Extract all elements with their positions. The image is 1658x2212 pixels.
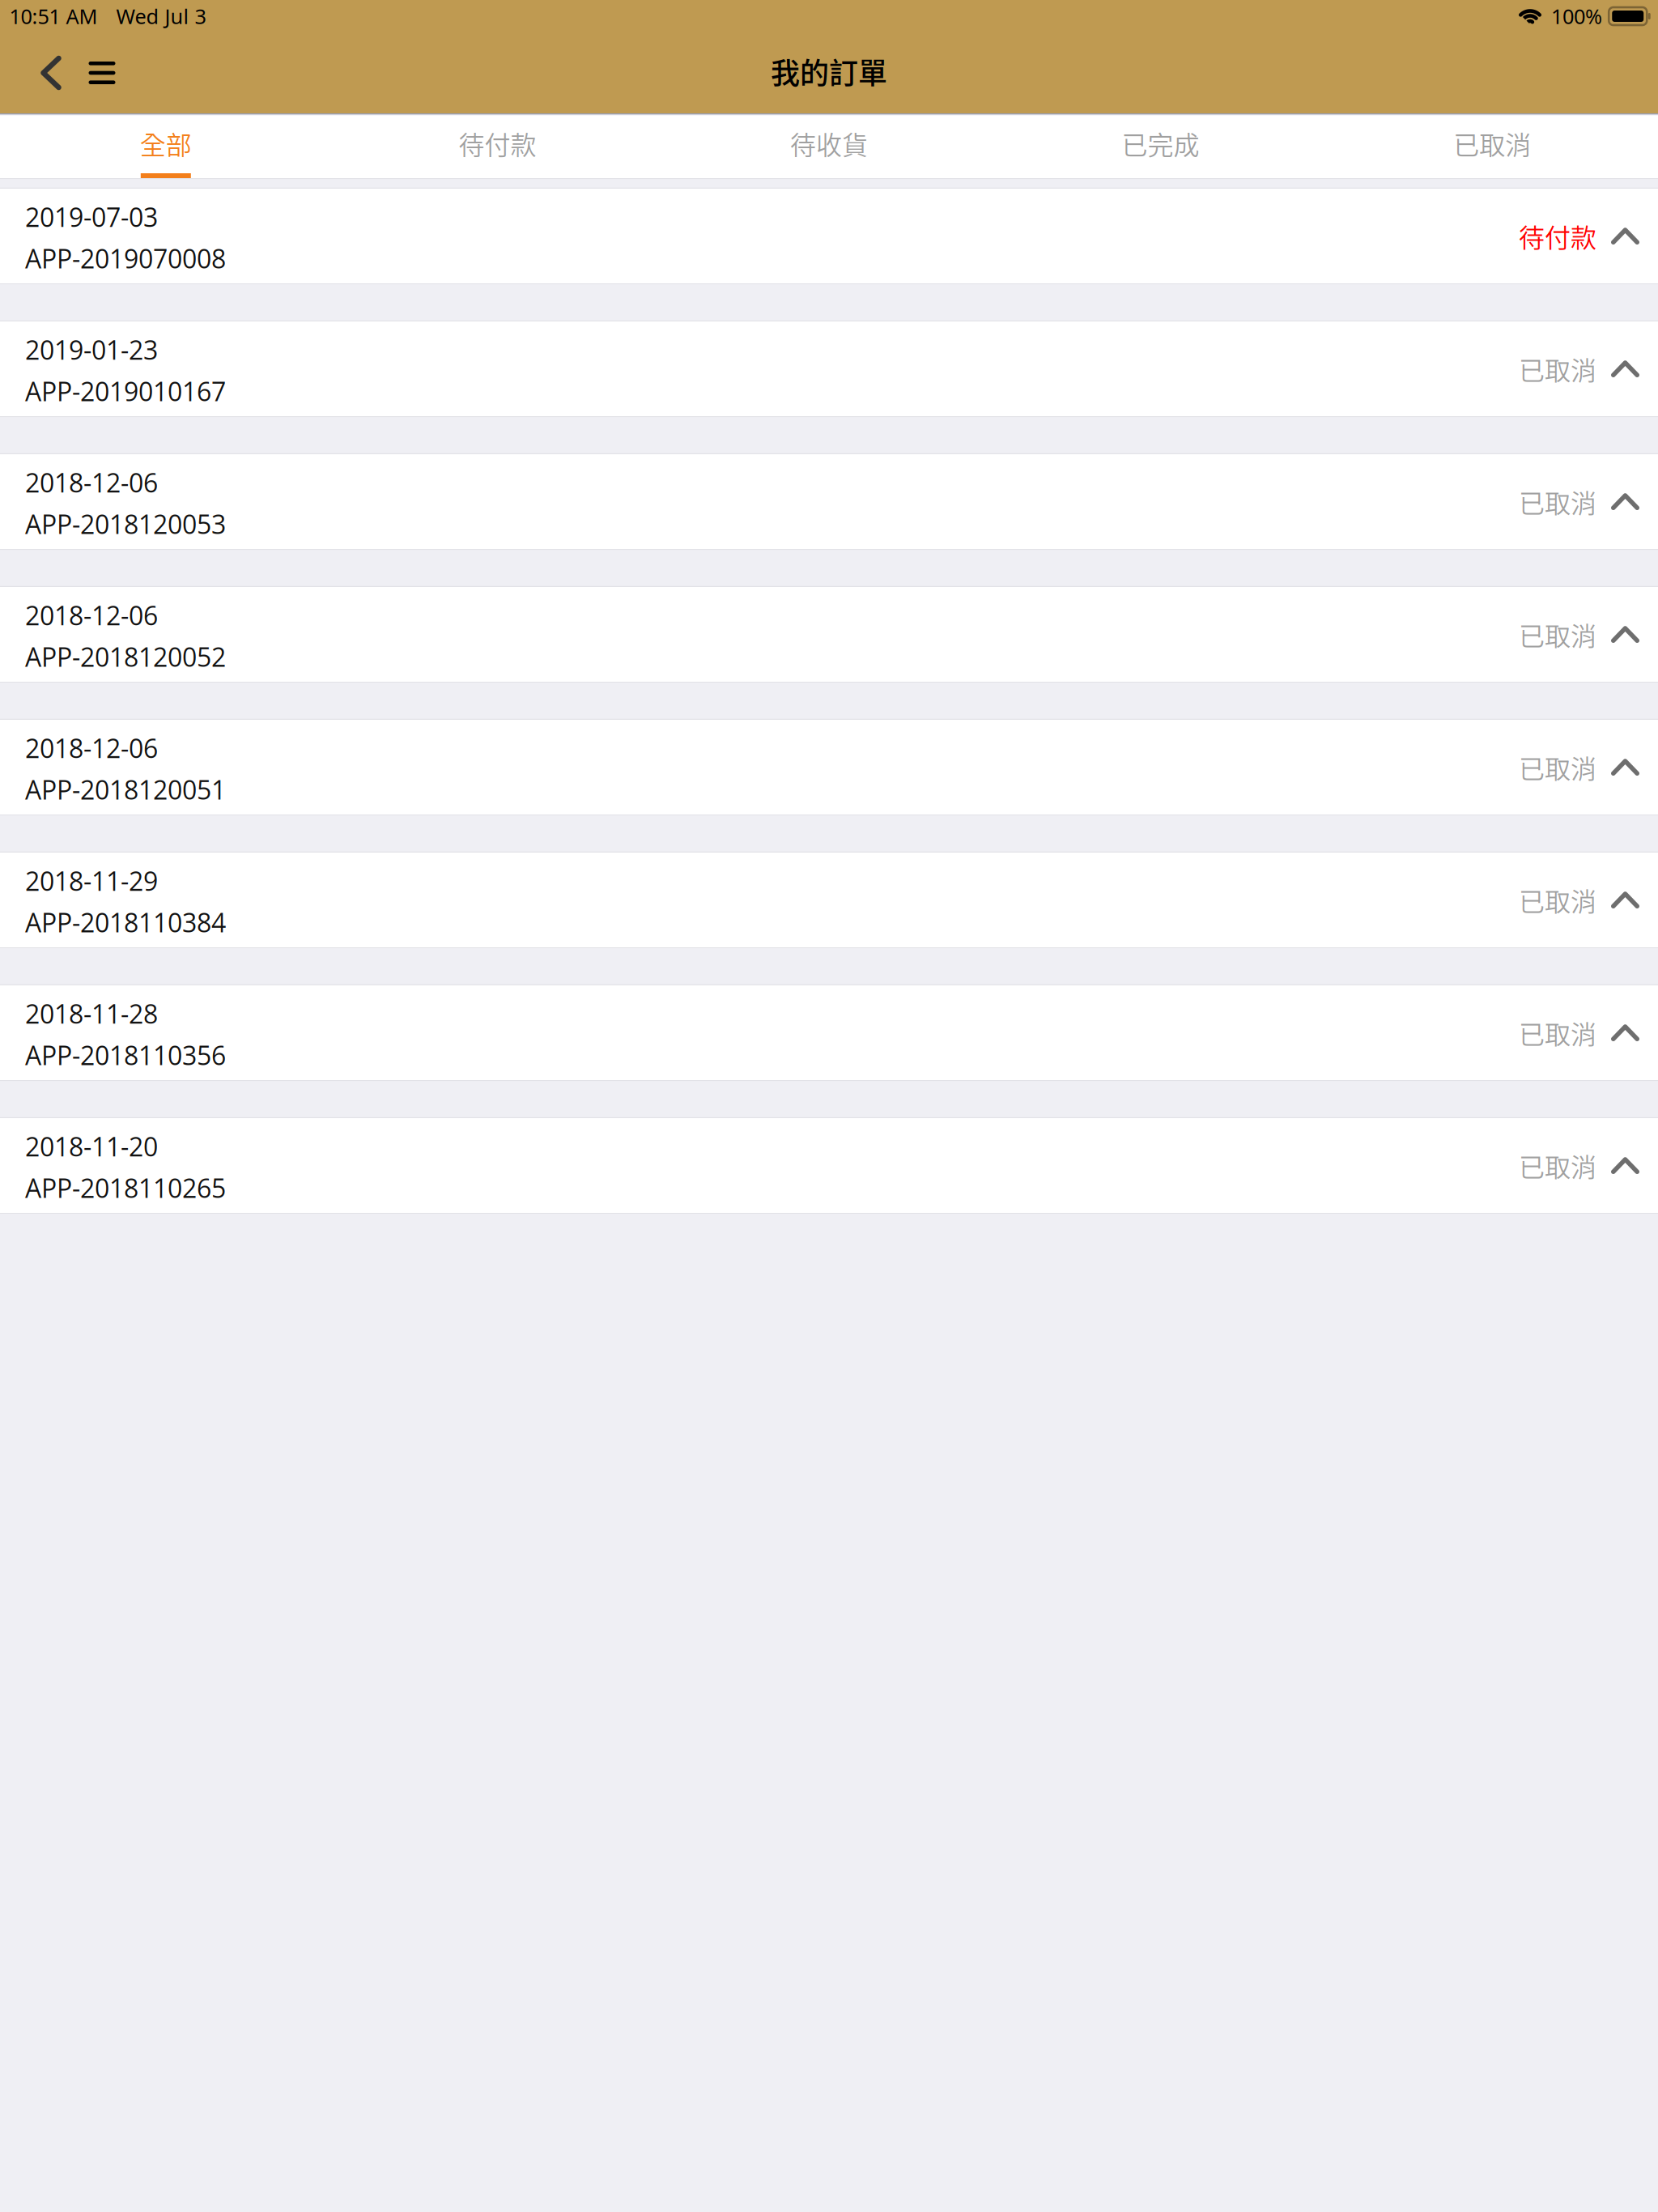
- button[interactable]: 已完成: [995, 113, 1326, 178]
- staticText: APP-2018120053: [25, 506, 226, 542]
- staticText: APP-2018110384: [25, 905, 226, 940]
- button[interactable]: 全部: [0, 113, 332, 178]
- staticText: APP-2018120051: [25, 772, 226, 807]
- button[interactable]: 待付款: [332, 113, 663, 178]
- button[interactable]: 2018-12-06: [0, 720, 1658, 815]
- staticText: APP-2019010167: [25, 373, 226, 409]
- button[interactable]: 2019-01-23: [0, 321, 1658, 416]
- button[interactable]: 2018-11-28: [0, 985, 1658, 1080]
- staticText: 2018-12-06: [25, 598, 158, 633]
- staticText: Wed Jul 3: [116, 3, 206, 30]
- staticText: 已取消: [1519, 1147, 1596, 1184]
- staticText: 已取消: [1519, 483, 1596, 520]
- button[interactable]: 2018-12-06: [0, 587, 1658, 682]
- staticText: APP-2018110356: [25, 1037, 226, 1073]
- staticText: 我的訂單: [771, 50, 887, 92]
- staticText: 全部: [140, 125, 192, 162]
- staticText: 10:51 AM: [9, 3, 98, 30]
- staticText: 2019-07-03: [25, 199, 158, 235]
- staticText: 100%: [1551, 3, 1602, 30]
- button[interactable]: 待收貨: [663, 113, 995, 178]
- staticText: 已取消: [1519, 881, 1596, 919]
- staticText: 2018-12-06: [25, 730, 158, 766]
- button[interactable]: 已取消: [1326, 113, 1658, 178]
- staticText: 2018-11-28: [25, 996, 158, 1031]
- staticText: 2019-01-23: [25, 332, 158, 367]
- button[interactable]: 2018-11-20: [0, 1118, 1658, 1213]
- button[interactable]: 2018-12-06: [0, 454, 1658, 549]
- staticText: 已取消: [1519, 1014, 1596, 1051]
- staticText: 已取消: [1519, 350, 1596, 388]
- staticText: 已取消: [1453, 125, 1531, 162]
- staticText: 2018-12-06: [25, 465, 158, 500]
- staticText: 2018-11-20: [25, 1129, 158, 1164]
- staticText: 已取消: [1519, 616, 1596, 653]
- staticText: APP-2019070008: [25, 241, 226, 276]
- staticText: 2018-11-29: [25, 863, 158, 899]
- staticText: 已取消: [1519, 748, 1596, 786]
- staticText: 待付款: [1519, 217, 1596, 255]
- staticText: 待收貨: [790, 125, 868, 162]
- staticText: 已完成: [1122, 125, 1199, 162]
- staticText: APP-2018110265: [25, 1170, 226, 1205]
- button[interactable]: Back: [26, 49, 76, 97]
- button[interactable]: Menu: [76, 49, 128, 97]
- staticText: 待付款: [459, 125, 536, 162]
- button[interactable]: 2019-07-03: [0, 189, 1658, 283]
- staticText: APP-2018120052: [25, 639, 226, 674]
- button[interactable]: 2018-11-29: [0, 853, 1658, 947]
